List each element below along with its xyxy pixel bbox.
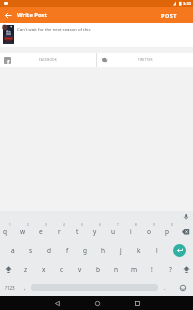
button[interactable] <box>179 260 193 279</box>
button[interactable]: k <box>130 241 148 260</box>
button[interactable]: n <box>107 260 125 279</box>
staticText: b <box>96 265 100 274</box>
button[interactable]: f <box>0 53 96 67</box>
button[interactable] <box>84 296 110 310</box>
staticText: 8 <box>135 223 137 227</box>
button[interactable]: x <box>35 260 53 279</box>
staticText: d <box>47 246 51 255</box>
staticText: s <box>29 246 33 255</box>
staticText: f <box>7 58 10 64</box>
button[interactable]: g <box>76 241 94 260</box>
button[interactable]: w <box>14 222 32 241</box>
staticText: t <box>76 227 79 236</box>
button[interactable]: d <box>40 241 58 260</box>
button[interactable]: c <box>53 260 71 279</box>
button[interactable]: TWITTER <box>97 53 193 67</box>
staticText: g <box>83 246 87 255</box>
button[interactable]: ! <box>143 260 161 279</box>
staticText: n <box>114 265 119 274</box>
button[interactable]: a <box>4 241 22 260</box>
staticText: o <box>147 227 151 236</box>
button[interactable]: b <box>89 260 107 279</box>
button[interactable] <box>166 241 193 260</box>
staticText: ? <box>169 265 172 274</box>
button[interactable]: q <box>0 222 14 241</box>
button[interactable]: m <box>125 260 143 279</box>
button[interactable]: POST <box>161 12 193 19</box>
button[interactable]: y <box>86 222 104 241</box>
staticText: r <box>58 227 61 236</box>
button[interactable]: ? <box>161 260 179 279</box>
staticText: x <box>42 265 46 274</box>
button[interactable]: j <box>112 241 130 260</box>
staticText: 7 <box>117 223 119 227</box>
staticText: ?123 <box>5 285 15 291</box>
button[interactable]: p <box>158 222 176 241</box>
button[interactable]: . <box>158 279 172 296</box>
staticText: j <box>120 246 122 255</box>
staticText: q <box>3 227 7 236</box>
button[interactable]: o <box>140 222 158 241</box>
button[interactable]: i <box>122 222 140 241</box>
button[interactable]: h <box>94 241 112 260</box>
staticText: u <box>111 227 116 236</box>
button[interactable]: v <box>71 260 89 279</box>
staticText: a <box>11 246 15 255</box>
button[interactable]: r <box>50 222 68 241</box>
staticText: e <box>39 227 43 236</box>
staticText: 3 <box>45 223 47 227</box>
button[interactable]: , <box>19 279 31 296</box>
button[interactable]: u <box>104 222 122 241</box>
button[interactable]: e <box>32 222 50 241</box>
staticText: 0 <box>171 223 173 227</box>
button[interactable]: f <box>58 241 76 260</box>
button[interactable] <box>176 222 189 241</box>
staticText: l <box>156 246 158 255</box>
button[interactable]: z <box>17 260 35 279</box>
staticText: POST <box>161 12 177 19</box>
button[interactable] <box>172 279 193 296</box>
staticText: 6 <box>99 223 101 227</box>
button[interactable]: t <box>68 222 86 241</box>
staticText: k <box>137 246 141 255</box>
staticText: 9 <box>153 223 155 227</box>
staticText: TWITTER <box>138 58 153 62</box>
staticText: v <box>78 265 82 274</box>
staticText: i <box>130 227 132 236</box>
button[interactable]: s <box>22 241 40 260</box>
staticText: 1 <box>9 223 11 227</box>
staticText: 5 <box>81 223 83 227</box>
staticText: z <box>24 265 28 274</box>
staticText: y <box>93 227 97 236</box>
staticText: ! <box>151 265 153 274</box>
staticText: FACEBOOK <box>39 58 57 62</box>
staticText: c <box>60 265 64 274</box>
staticText: f <box>66 246 69 255</box>
staticText: . <box>164 284 166 292</box>
button[interactable] <box>44 296 70 310</box>
staticText: 2 <box>27 223 29 227</box>
staticText: w <box>20 227 26 236</box>
button[interactable] <box>0 7 16 23</box>
button[interactable]: l <box>148 241 166 260</box>
button[interactable]: ?123 <box>0 279 19 296</box>
button[interactable] <box>0 260 17 279</box>
button[interactable] <box>124 296 150 310</box>
staticText: h <box>101 246 106 255</box>
staticText: Write Post <box>17 11 48 19</box>
staticText: m <box>131 265 138 274</box>
staticText: p <box>165 227 169 236</box>
staticText: Can't wait for the next season of this <box>17 26 91 32</box>
staticText: , <box>24 284 26 292</box>
staticText: 4 <box>63 223 65 227</box>
staticText: 3:33 <box>183 1 191 6</box>
